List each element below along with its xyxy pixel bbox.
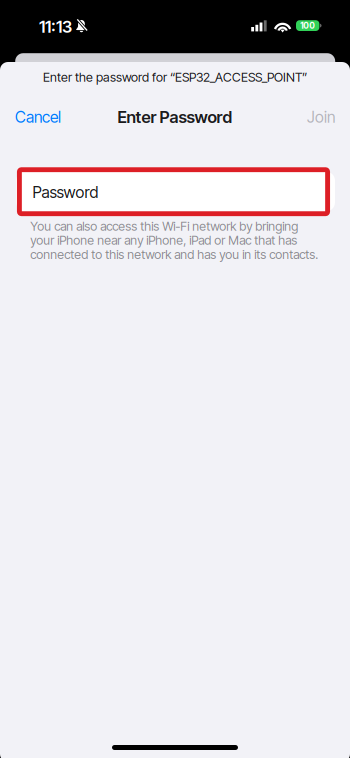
staticText: 11:13 bbox=[39, 16, 72, 37]
button[interactable]: Cancel bbox=[15, 99, 71, 135]
staticText: Password bbox=[33, 183, 99, 202]
staticText: 100 bbox=[300, 20, 315, 31]
button[interactable]: Password bbox=[16, 172, 335, 211]
staticText: Cancel bbox=[15, 107, 61, 126]
staticText: You can also access this Wi-Fi network b… bbox=[30, 218, 318, 262]
staticText: Join bbox=[307, 107, 335, 126]
button[interactable]: Join bbox=[303, 99, 335, 135]
staticText: Enter Password bbox=[117, 107, 232, 127]
staticText: Enter the password for “ESP32_ACCESS_POI… bbox=[43, 69, 307, 85]
